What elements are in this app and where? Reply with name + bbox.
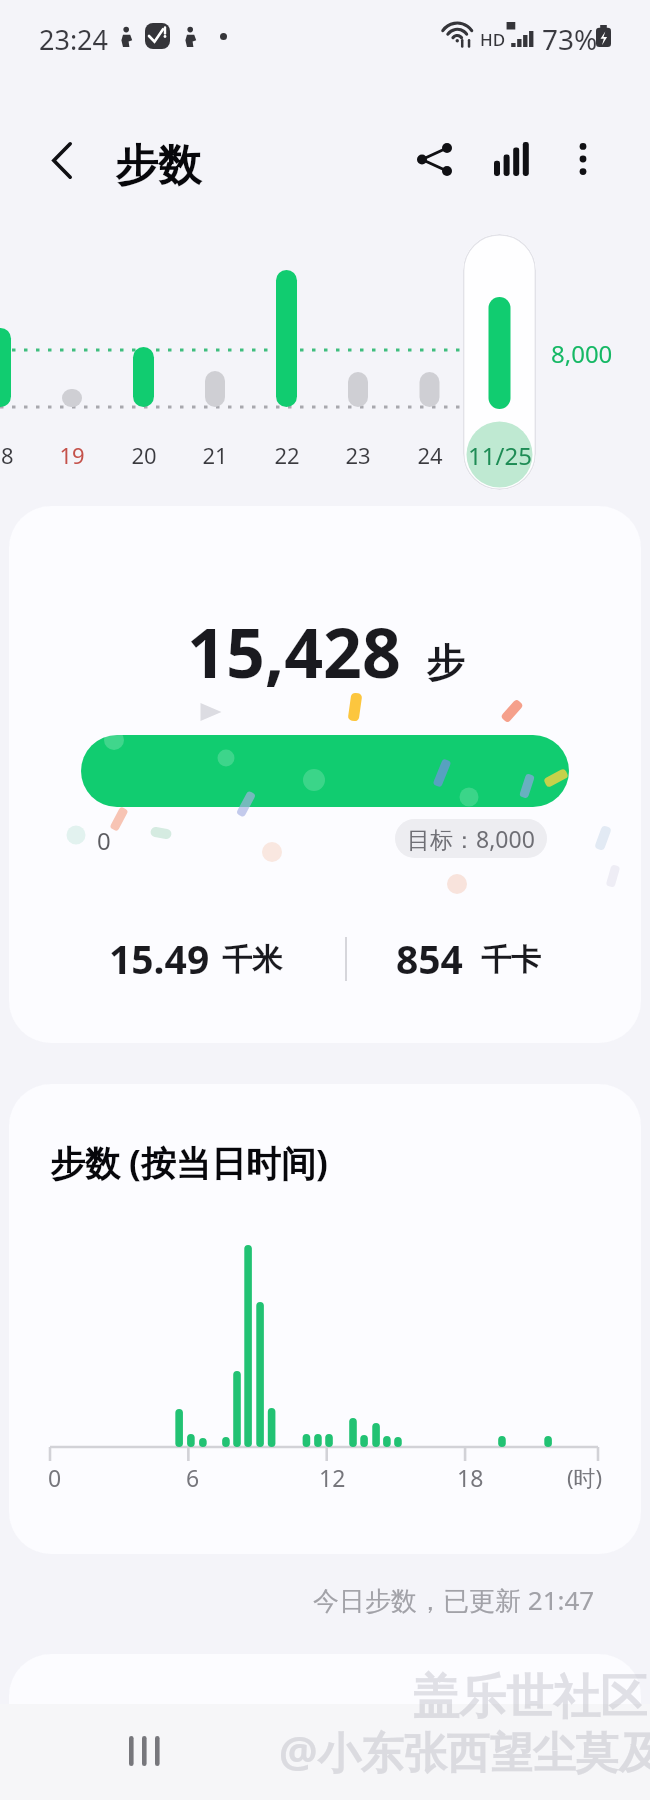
staticText: 19	[59, 440, 85, 470]
staticText: HD	[480, 28, 506, 51]
staticText: 18	[0, 440, 14, 470]
staticText: 千米	[222, 941, 282, 979]
staticText: 千卡	[481, 941, 541, 979]
button[interactable]	[463, 234, 536, 490]
staticText: 21	[202, 440, 228, 470]
staticText: 目标：8,000	[407, 823, 535, 854]
staticText: 24	[417, 440, 443, 470]
staticText: 0	[97, 824, 111, 857]
button[interactable]: Chart	[481, 128, 543, 190]
button[interactable]: More options	[552, 128, 614, 190]
staticText: 15.49	[109, 932, 210, 985]
staticText: 23:24	[39, 21, 109, 58]
staticText: 73%	[542, 20, 598, 58]
staticText: 步数	[115, 139, 201, 193]
staticText: 23	[345, 440, 371, 470]
staticText: 今日步数，已更新 21:47	[313, 1582, 595, 1618]
staticText: (时)	[567, 1462, 603, 1492]
staticText: 8,000	[551, 337, 613, 370]
staticText: 步	[426, 639, 464, 687]
staticText: 854	[396, 932, 463, 985]
staticText: 12	[319, 1462, 346, 1493]
staticText: 15,428	[187, 605, 401, 698]
staticText: @⼩东张西望尘莫及_	[279, 1722, 650, 1781]
staticText: 6	[186, 1462, 200, 1493]
staticText: 0	[48, 1462, 62, 1493]
staticText: 盖乐世社区	[412, 1668, 647, 1727]
staticText: 18	[457, 1462, 484, 1493]
staticText: 步数 (按当日时间)	[50, 1139, 328, 1187]
staticText: 22	[274, 440, 300, 470]
button[interactable]: Recent apps	[110, 1716, 180, 1786]
staticText: 20	[131, 440, 157, 470]
button[interactable]: Back	[31, 129, 93, 191]
button[interactable]: Share	[403, 128, 465, 190]
staticText: 11/25	[468, 439, 532, 472]
